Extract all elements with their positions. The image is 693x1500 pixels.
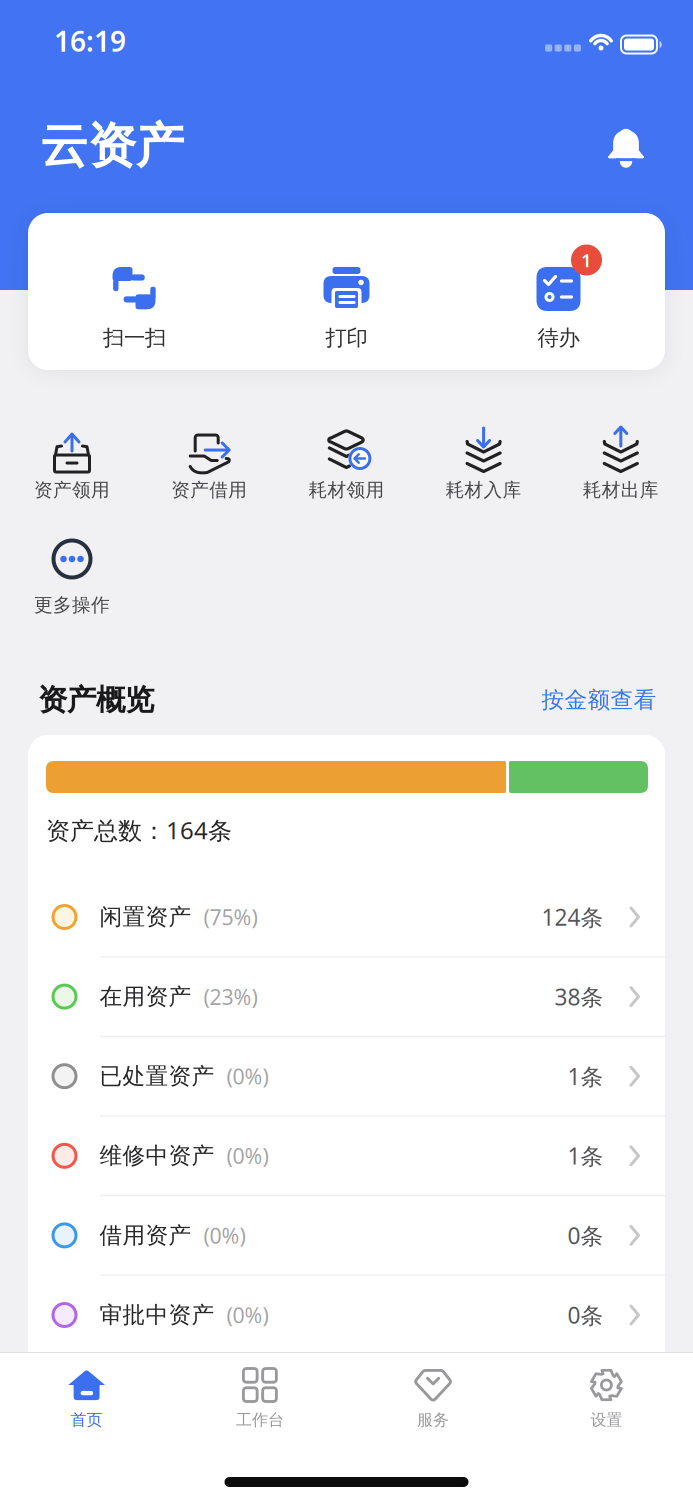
staticText: 按金额查看: [541, 686, 656, 714]
button[interactable]: 已处置资产: [45, 1037, 647, 1116]
button[interactable]: 维修中资产: [45, 1116, 647, 1195]
staticText: 耗材入库: [446, 478, 522, 501]
button[interactable]: 耗材入库: [419, 415, 549, 511]
staticText: 闲置资产: [99, 903, 191, 931]
staticText: 维修中资产: [99, 1142, 214, 1170]
staticText: 资产概览: [38, 682, 154, 718]
button[interactable]: 按金额查看: [541, 686, 656, 714]
staticText: 待办: [537, 325, 579, 351]
staticText: 1条: [567, 1141, 603, 1171]
button[interactable]: 借用资产: [45, 1196, 647, 1275]
staticText: (0%): [226, 1142, 268, 1170]
button[interactable]: 设置: [536, 1364, 676, 1440]
staticText: 扫一扫: [103, 325, 166, 351]
button[interactable]: 通知: [608, 127, 644, 167]
staticText: 已处置资产: [99, 1062, 214, 1090]
button[interactable]: 审批中资产: [45, 1275, 647, 1354]
staticText: 设置: [590, 1410, 622, 1430]
button[interactable]: 打印: [271, 249, 421, 361]
staticText: 0条: [567, 1220, 603, 1250]
staticText: 首页: [71, 1410, 103, 1430]
staticText: 借用资产: [99, 1221, 191, 1249]
staticText: 资产总数：164条: [46, 814, 232, 846]
staticText: 更多操作: [34, 593, 110, 616]
staticText: 1: [581, 248, 592, 272]
staticText: 云资产: [40, 116, 184, 175]
button[interactable]: 待办: [483, 249, 633, 361]
staticText: 耗材领用: [308, 478, 384, 501]
staticText: (23%): [203, 982, 257, 1011]
button[interactable]: 耗材领用: [281, 415, 411, 511]
staticText: 服务: [417, 1410, 449, 1430]
button[interactable]: 耗材出库: [556, 415, 686, 511]
button[interactable]: 资产领用: [7, 415, 137, 511]
staticText: 审批中资产: [99, 1301, 214, 1329]
staticText: (0%): [226, 1062, 268, 1090]
button[interactable]: 首页: [17, 1364, 157, 1440]
staticText: 38条: [554, 981, 603, 1012]
button[interactable]: 在用资产: [45, 957, 647, 1036]
staticText: 1条: [567, 1061, 603, 1091]
button[interactable]: 工作台: [190, 1364, 330, 1440]
staticText: 打印: [325, 325, 367, 351]
button[interactable]: 扫一扫: [59, 249, 209, 361]
staticText: (75%): [203, 903, 257, 931]
staticText: (0%): [203, 1221, 245, 1249]
button[interactable]: 更多操作: [7, 530, 137, 626]
button[interactable]: 服务: [363, 1364, 503, 1440]
button[interactable]: 资产借用: [144, 415, 274, 511]
staticText: 耗材出库: [583, 478, 659, 501]
button[interactable]: 闲置资产: [45, 877, 647, 956]
staticText: 资产借用: [171, 478, 247, 501]
staticText: 工作台: [236, 1410, 284, 1430]
staticText: 0条: [567, 1300, 603, 1330]
staticText: 在用资产: [99, 983, 191, 1010]
staticText: (0%): [226, 1301, 268, 1329]
staticText: 124条: [541, 902, 603, 932]
staticText: 16:19: [54, 22, 126, 60]
staticText: 资产领用: [34, 478, 110, 501]
